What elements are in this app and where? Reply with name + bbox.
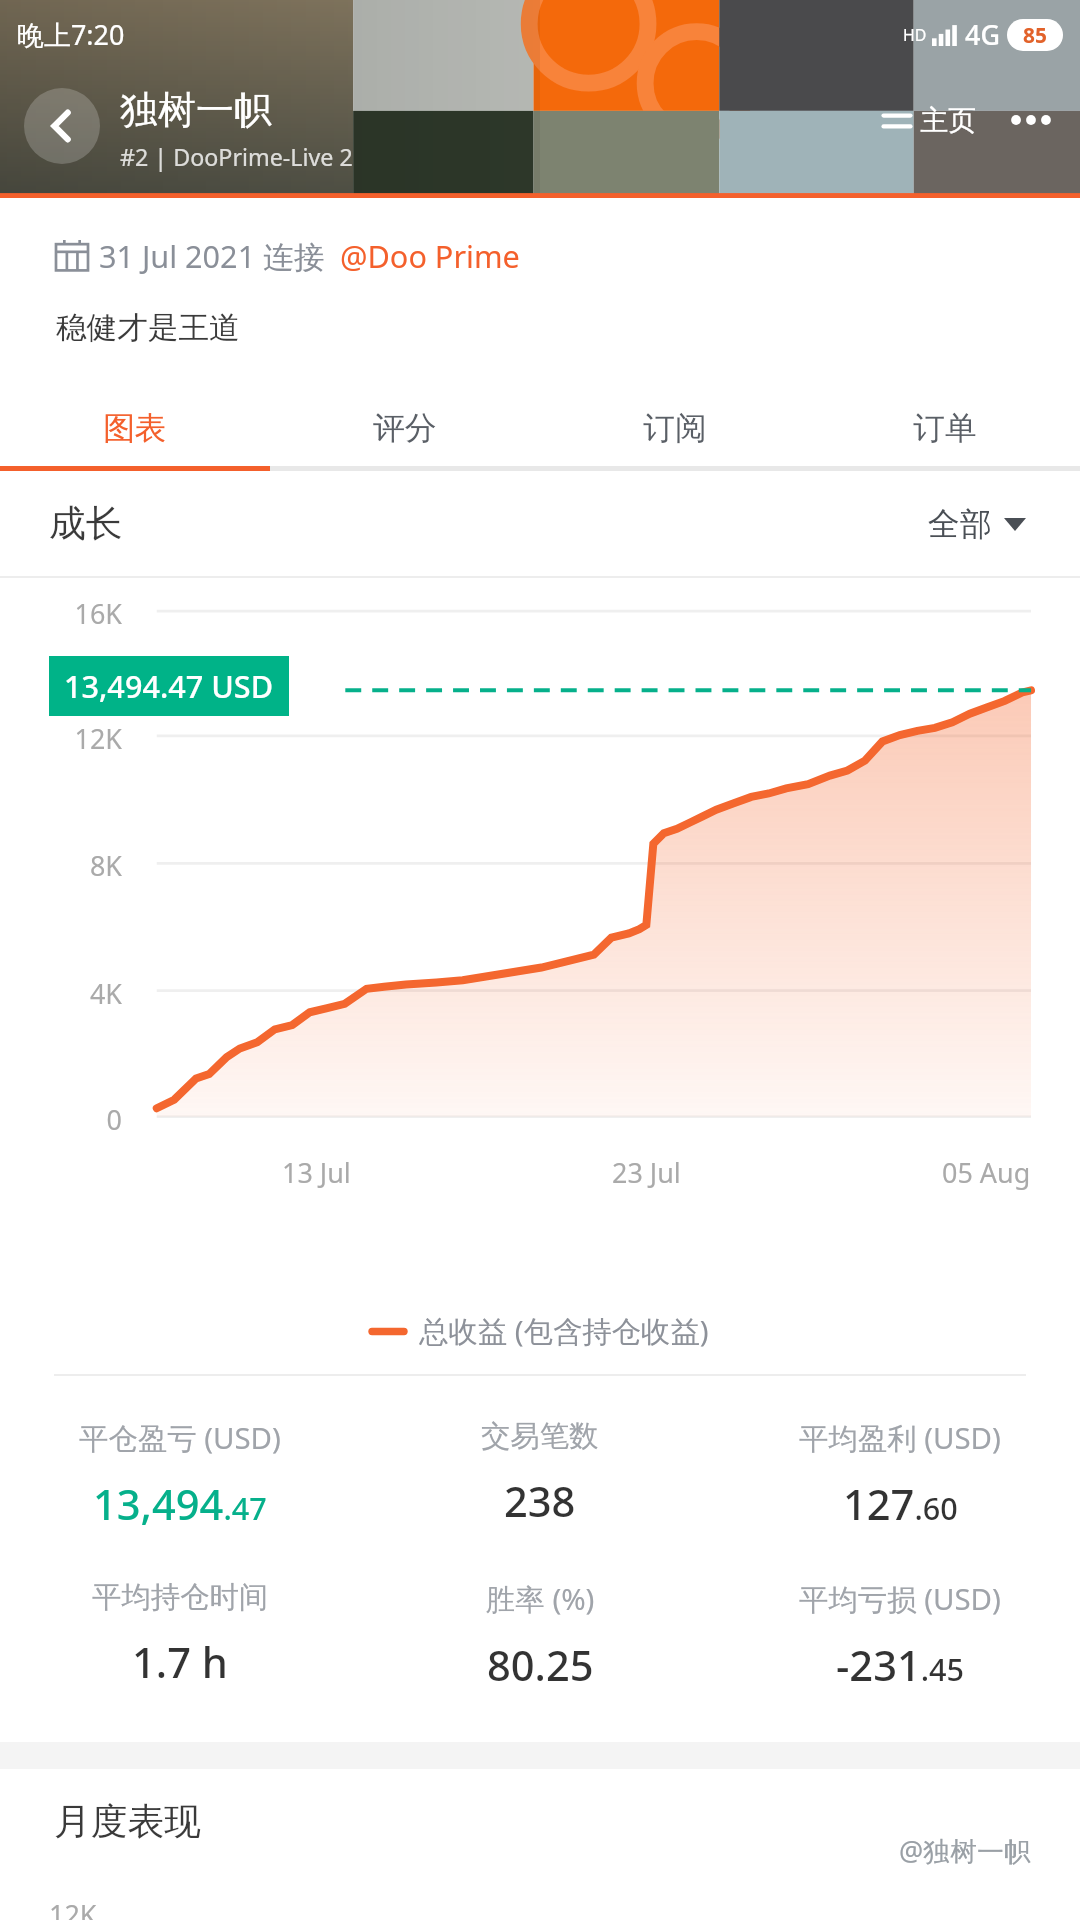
staticText: HD <box>903 24 927 46</box>
button[interactable]: Back <box>24 88 100 164</box>
staticText: @独树一帜 <box>899 1832 1031 1869</box>
staticText: 总收益 (包含持仓收益) <box>419 1311 709 1351</box>
staticText: 13,494.47 <box>93 1475 267 1532</box>
staticText: -231.45 <box>836 1636 965 1693</box>
staticText: #2 | DooPrime-Live 2 <box>120 141 353 173</box>
staticText: 4K <box>49 975 122 1012</box>
staticText: 全部 <box>928 504 992 544</box>
staticText: 85 <box>1023 21 1047 49</box>
staticText: 月度表现 <box>54 1799 201 1845</box>
staticText: 4G <box>965 16 1000 53</box>
staticText: 13,494.47 USD <box>64 665 274 707</box>
staticText: 31 Jul 2021 连接 <box>99 235 325 277</box>
staticText: 评分 <box>373 408 437 448</box>
staticText: 80.25 <box>487 1636 594 1693</box>
staticText: 1.7 h <box>132 1633 228 1690</box>
staticText: 16K <box>49 595 122 632</box>
staticText: 胜率 (%) <box>486 1579 595 1619</box>
staticText: 8K <box>49 847 122 884</box>
staticText: 图表 <box>103 408 167 448</box>
button[interactable]: More options <box>999 88 1063 152</box>
staticText: 23 Jul <box>612 1154 681 1191</box>
staticText: 稳健才是王道 <box>56 309 240 348</box>
staticText: 独树一帜 <box>120 86 272 134</box>
button[interactable]: @Doo Prime <box>340 235 520 277</box>
staticText: 订单 <box>913 408 977 448</box>
staticText: 主页 <box>920 103 977 138</box>
staticText: 12K <box>49 1896 97 1920</box>
staticText: 平均持仓时间 <box>92 1579 269 1616</box>
staticText: @Doo Prime <box>340 235 520 277</box>
staticText: 238 <box>504 1472 576 1529</box>
staticText: 晚上7:20 <box>17 16 125 53</box>
staticText: 13 Jul <box>282 1154 351 1191</box>
button[interactable]: 评分 <box>270 390 540 466</box>
staticText: 05 Aug <box>942 1154 1031 1191</box>
staticText: 交易笔数 <box>481 1418 599 1455</box>
staticText: 12K <box>49 720 122 757</box>
staticText: 成长 <box>49 501 123 547</box>
button[interactable]: 全部 <box>923 499 1031 549</box>
button[interactable]: 订单 <box>810 390 1080 466</box>
staticText: 平均亏损 (USD) <box>799 1579 1001 1619</box>
staticText: 平仓盈亏 (USD) <box>79 1418 281 1458</box>
button[interactable]: 订阅 <box>540 390 810 466</box>
staticText: 订阅 <box>643 408 707 448</box>
staticText: 0 <box>49 1101 122 1138</box>
button[interactable]: 图表 <box>0 390 270 466</box>
staticText: 平均盈利 (USD) <box>799 1418 1001 1458</box>
staticText: 127.60 <box>843 1475 958 1532</box>
button[interactable]: 主页 <box>871 96 987 145</box>
